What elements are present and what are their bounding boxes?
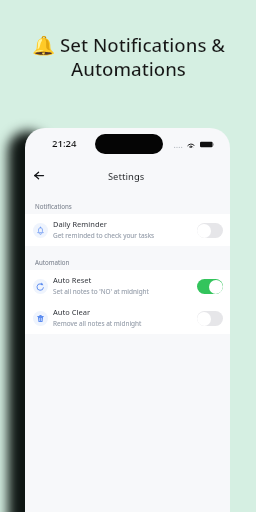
button[interactable]: Back (29, 165, 49, 185)
button[interactable]: Switch off (197, 311, 223, 326)
button[interactable]: Daily Reminder (25, 214, 230, 246)
staticText: Settings (108, 170, 145, 183)
button[interactable]: Auto Clear (25, 302, 230, 334)
button[interactable]: Switch on (197, 279, 223, 294)
staticText: Auto Reset (53, 275, 92, 285)
button[interactable]: Switch off (197, 223, 223, 238)
staticText: Daily Reminder (53, 219, 107, 229)
staticText: Auto Clear (53, 307, 91, 317)
staticText: 🔔 Set Notifications & Automations (32, 32, 225, 82)
button[interactable]: Auto Reset (25, 270, 230, 302)
staticText: Notifications (35, 202, 72, 210)
staticText: Set all notes to 'NO' at midnight (53, 287, 149, 296)
staticText: Automation (35, 258, 70, 266)
staticText: Get reminded to check your tasks (53, 231, 155, 240)
staticText: 21:24 (52, 137, 77, 150)
staticText: Remove all notes at midnight (53, 319, 142, 328)
